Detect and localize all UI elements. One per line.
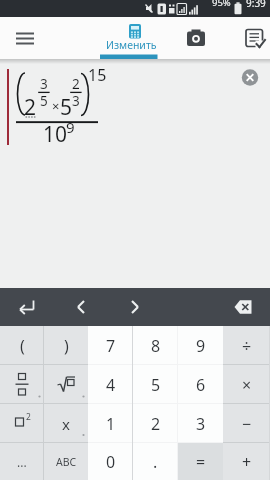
staticText: 3: [196, 413, 206, 435]
staticText: =: [196, 451, 206, 473]
staticText: ÷: [242, 335, 252, 357]
staticText: ...: [17, 454, 27, 470]
staticText: 0: [106, 451, 116, 473]
staticText: 15: [88, 64, 107, 86]
staticText: +: [242, 451, 252, 473]
staticText: −: [242, 413, 252, 435]
staticText: 9:39: [246, 0, 266, 10]
staticText: 8: [151, 335, 161, 357]
staticText: 5: [40, 92, 48, 110]
staticText: 1: [106, 413, 116, 435]
staticText: ×: [52, 97, 60, 115]
staticText: 7: [106, 335, 116, 357]
staticText: 2: [26, 411, 31, 423]
staticText: 3: [72, 92, 80, 110]
staticText: 9: [196, 335, 206, 357]
staticText: ): [64, 335, 69, 357]
staticText: ABC: [56, 455, 77, 469]
staticText: 5: [60, 93, 73, 122]
staticText: (: [20, 335, 25, 357]
staticText: 10: [43, 120, 68, 149]
staticText: 6: [196, 374, 206, 396]
staticText: 3: [40, 75, 48, 93]
staticText: Изменить: [106, 38, 157, 52]
staticText: 5: [151, 374, 161, 396]
staticText: x: [62, 414, 70, 434]
staticText: 2: [24, 93, 37, 122]
staticText: 95%: [212, 0, 231, 9]
staticText: 4: [106, 374, 116, 396]
staticText: ×: [242, 374, 252, 396]
staticText: .: [153, 451, 158, 473]
staticText: 2: [72, 75, 80, 93]
staticText: 9: [66, 117, 75, 137]
staticText: 2: [151, 413, 161, 435]
